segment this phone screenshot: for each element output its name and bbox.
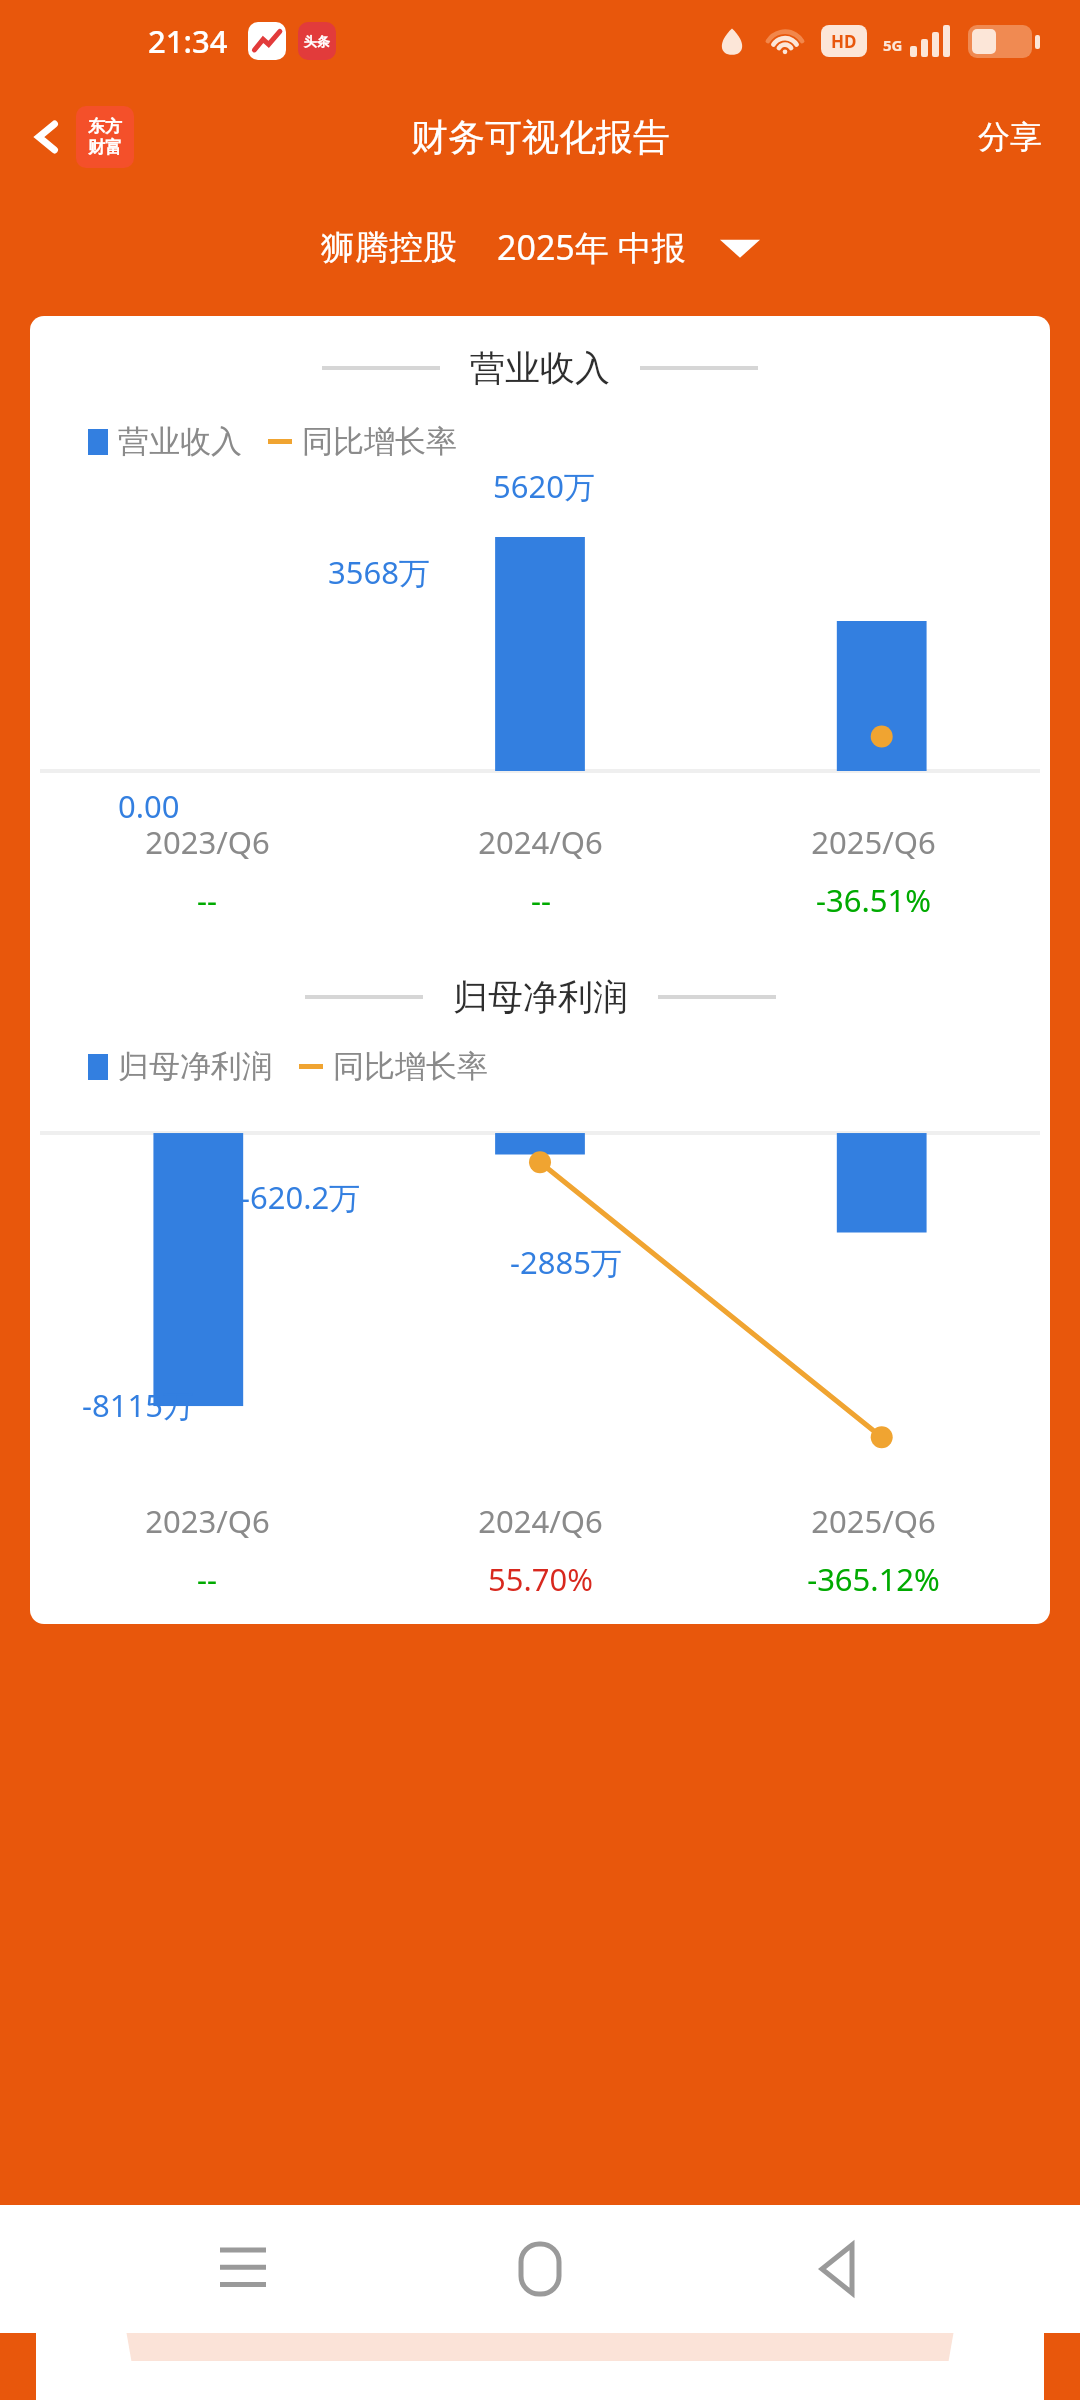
staticText: 归母净利润 [118,1047,273,1086]
staticText: -365.12% [807,1558,940,1600]
staticText: -2885万 [510,1241,622,1283]
staticText: 主营业务 [460,2284,620,2334]
staticText: HD [831,30,857,53]
staticText: 0.00 [118,785,180,827]
button[interactable]: 返回 [783,2214,893,2324]
staticText: 财富 [88,137,122,158]
button[interactable]: 返回 [22,98,142,176]
staticText: 东方 [88,116,122,137]
staticText: -- [197,879,217,921]
staticText: 财务可视化报告 [411,114,670,161]
button[interactable]: 分享 [968,107,1052,167]
staticText: 55.70% [488,1558,593,1600]
staticText: 2025/Q6 [811,1500,936,1542]
button[interactable]: 最近任务 [188,2214,298,2324]
staticText: -36.51% [816,879,931,921]
staticText: -8115万 [82,1384,194,1426]
staticText: 头条 [304,33,330,49]
staticText: 2023/Q6 [145,821,270,863]
staticText: 5620万 [493,465,595,507]
staticText: 2024/Q6 [478,821,603,863]
staticText: 分享 [978,117,1042,157]
staticText: -- [531,879,551,921]
staticText: 5G [883,35,903,55]
staticText: 2023/Q6 [145,1500,270,1542]
button[interactable] [36,2265,1044,2400]
staticText: 同比增长率 [302,422,457,461]
staticText: 3568万 [328,551,430,593]
button[interactable]: 狮腾控股 [0,192,1080,302]
staticText: 21:34 [148,20,228,62]
staticText: 2025年 中报 [497,224,686,270]
staticText: 同比增长率 [333,1047,488,1086]
staticText: 2025/Q6 [811,821,936,863]
button[interactable]: 主页 [485,2214,595,2324]
staticText: 狮腾控股 [321,226,457,269]
staticText: 归母净利润 [453,975,628,1019]
staticText: -620.2万 [240,1176,361,1218]
staticText: 营业收入 [118,422,242,461]
staticText: 营业收入 [470,346,610,390]
staticText: -- [197,1558,217,1600]
staticText: 2024/Q6 [478,1500,603,1542]
